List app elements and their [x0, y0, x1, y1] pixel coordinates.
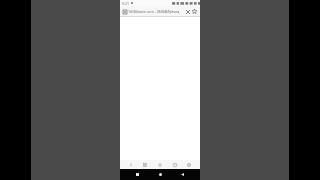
button[interactable]: Page info — [122, 9, 127, 14]
staticText: 9:21 — [122, 1, 129, 6]
button[interactable]: Home — [156, 170, 165, 179]
staticText: 1thMinute.com - 060kBZdevea, 7th — [128, 9, 183, 14]
button[interactable]: Forward — [141, 161, 149, 169]
button[interactable]: Recents — [133, 170, 142, 179]
button[interactable]: Tabs — [171, 161, 179, 169]
button[interactable]: 1thMinute.com - 060kBZdevea, 7th — [128, 9, 183, 14]
button[interactable]: Back — [178, 170, 187, 179]
button[interactable]: Menu — [185, 161, 193, 169]
button[interactable]: Stop loading — [184, 8, 191, 15]
button[interactable]: Back — [127, 161, 135, 169]
button[interactable]: Bookmark — [191, 8, 198, 15]
button[interactable]: Bookmarks — [156, 161, 164, 169]
